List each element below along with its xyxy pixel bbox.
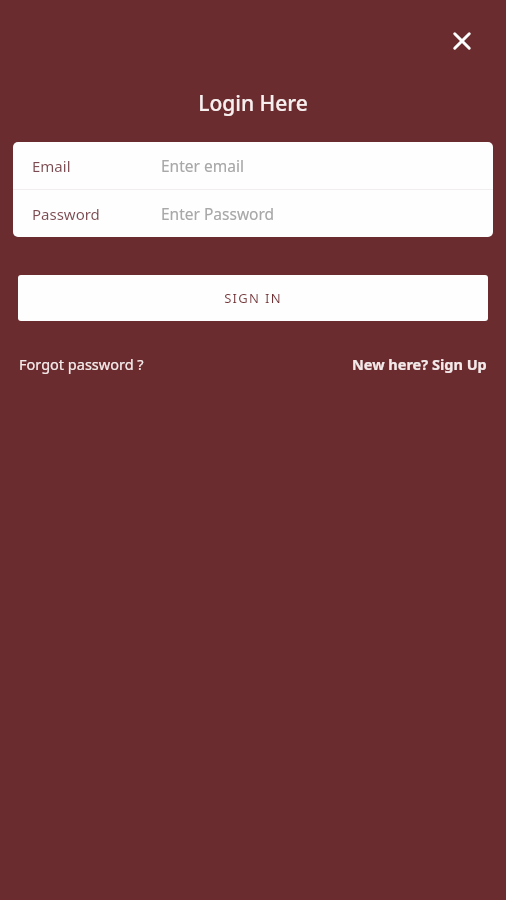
- staticText: Enter Password: [161, 203, 275, 224]
- staticText: Forgot password ?: [19, 354, 144, 374]
- button[interactable]: Password: [13, 190, 493, 237]
- staticText: Password: [32, 204, 100, 224]
- staticText: New here? Sign Up: [352, 354, 487, 374]
- button[interactable]: Forgot password ?: [19, 354, 144, 374]
- staticText: SIGN IN: [224, 289, 282, 307]
- staticText: Enter email: [161, 155, 244, 176]
- staticText: Email: [32, 156, 71, 176]
- button[interactable]: Email: [13, 142, 493, 189]
- button[interactable]: New here? Sign Up: [352, 354, 487, 374]
- button[interactable]: SIGN IN: [18, 275, 488, 321]
- button[interactable]: Close: [440, 19, 484, 63]
- staticText: Login Here: [198, 89, 308, 118]
